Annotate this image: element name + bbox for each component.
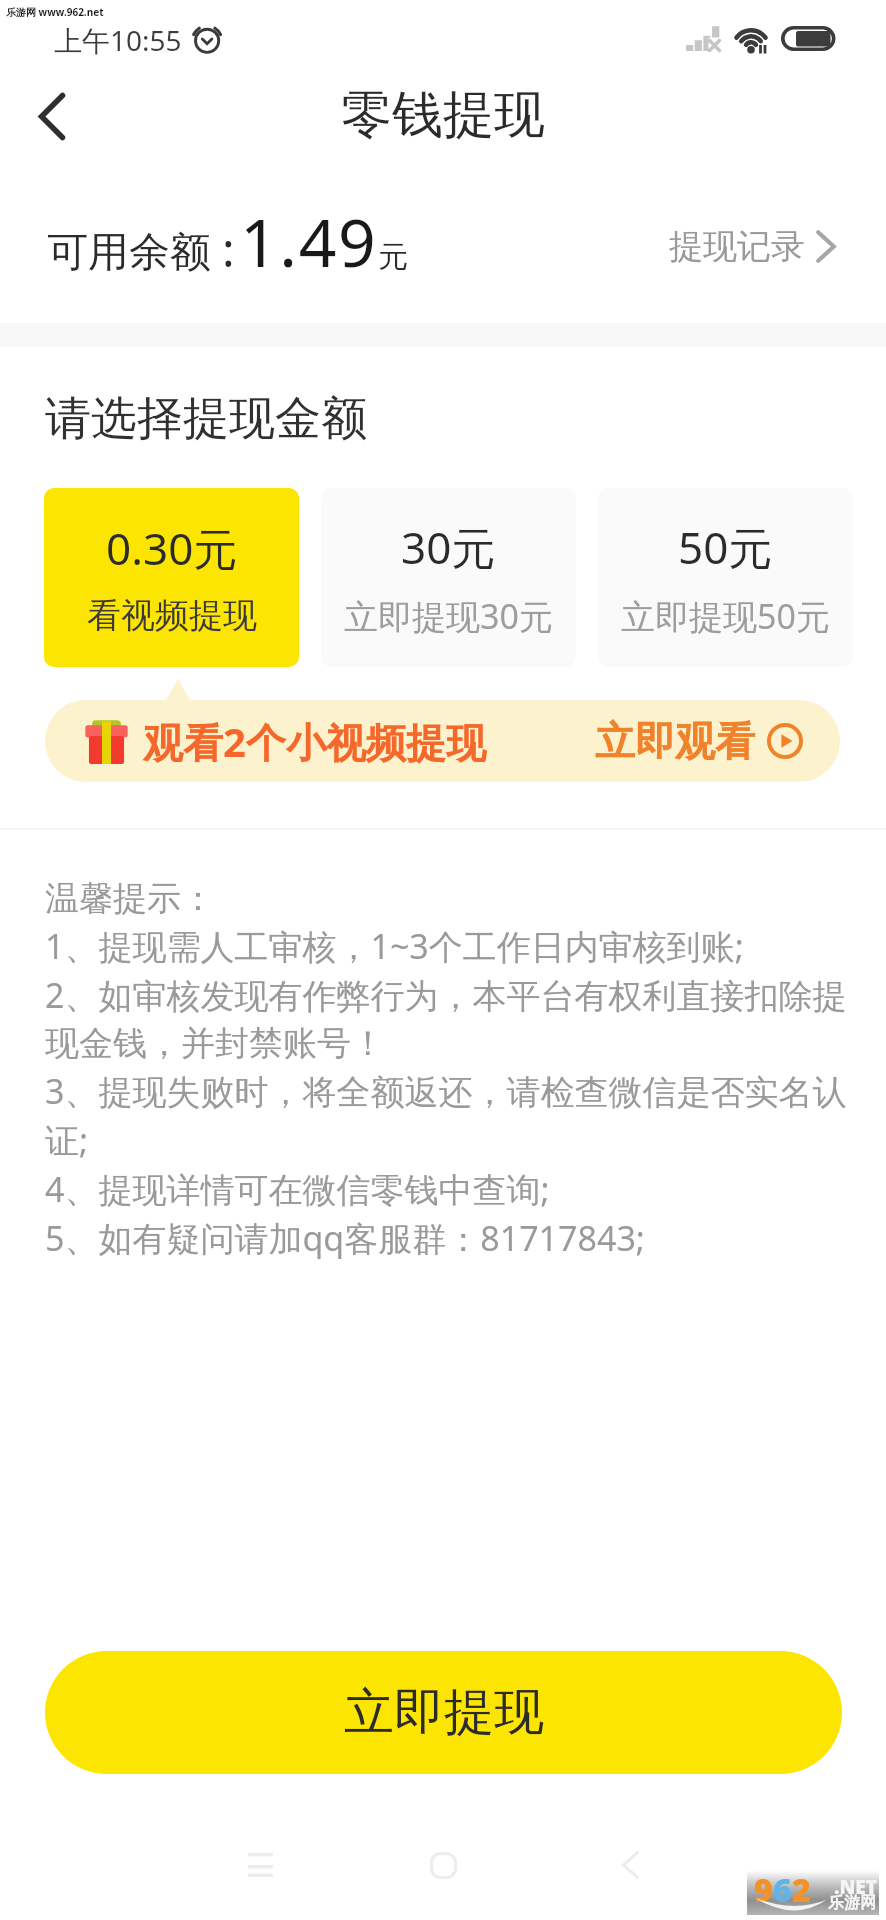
button[interactable]: 提现记录 bbox=[669, 225, 836, 268]
staticText: 乐游网 bbox=[828, 1893, 876, 1913]
staticText: 9 bbox=[754, 1868, 773, 1912]
staticText: 可用余额 bbox=[47, 227, 211, 279]
staticText: 立即提现30元 bbox=[344, 593, 553, 639]
staticText: 30元 bbox=[401, 517, 496, 577]
staticText: 0.30元 bbox=[106, 518, 238, 578]
staticText: .NET bbox=[834, 1874, 877, 1900]
staticText: 立即观看 bbox=[595, 716, 755, 766]
staticText: 乐游网 www.962.net bbox=[6, 5, 104, 19]
staticText: 看视频提现 bbox=[87, 594, 257, 637]
staticText: : bbox=[222, 217, 235, 281]
button[interactable]: 返回 bbox=[0, 76, 104, 156]
staticText: 上午10:55 bbox=[54, 21, 182, 59]
staticText: 立即提现50元 bbox=[621, 593, 830, 639]
staticText: 6 bbox=[773, 1868, 792, 1912]
staticText: 1.49 bbox=[240, 196, 378, 286]
staticText: 元 bbox=[378, 238, 408, 276]
staticText: 50元 bbox=[678, 517, 773, 577]
button[interactable]: 50元 bbox=[598, 488, 853, 667]
staticText: 2 bbox=[792, 1868, 811, 1912]
staticText: 观看2个小视频提现 bbox=[143, 714, 486, 769]
button[interactable]: 0.30元 bbox=[44, 488, 299, 667]
staticText: 温馨提示： 1、提现需人工审核，1~3个工作日内审核到账; 2、如审核发现有作弊… bbox=[45, 877, 857, 1261]
staticText: 请选择提现金额 bbox=[45, 390, 367, 448]
staticText: 立即提现 bbox=[344, 1681, 544, 1744]
button[interactable]: 观看2个小视频提现 bbox=[45, 700, 840, 782]
button[interactable]: 立即提现 bbox=[45, 1651, 842, 1774]
button[interactable]: 立即观看 bbox=[595, 716, 803, 766]
button[interactable]: 30元 bbox=[321, 488, 576, 667]
staticText: 零钱提现 bbox=[341, 83, 545, 147]
staticText: 提现记录 bbox=[669, 225, 805, 268]
